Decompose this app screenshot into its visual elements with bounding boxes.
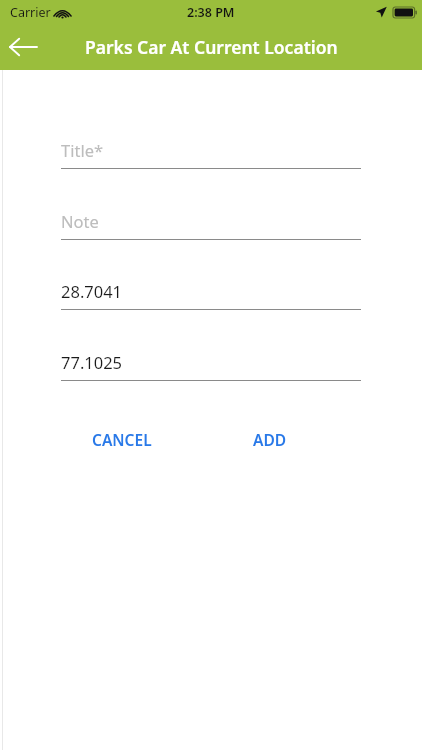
staticText: CANCEL — [92, 429, 152, 450]
staticText: Note — [61, 210, 99, 232]
staticText: 77.1025 — [61, 351, 123, 373]
button[interactable]: Back — [0, 24, 46, 70]
button[interactable]: CANCEL — [61, 424, 183, 454]
staticText: ADD — [253, 429, 287, 450]
staticText: Parks Car At Current Location — [85, 35, 338, 59]
staticText: 28.7041 — [61, 280, 123, 302]
button[interactable]: ADD — [225, 424, 315, 454]
staticText: 2:38 PM — [187, 4, 235, 21]
staticText: Carrier — [10, 4, 51, 21]
staticText: Title* — [61, 139, 104, 161]
